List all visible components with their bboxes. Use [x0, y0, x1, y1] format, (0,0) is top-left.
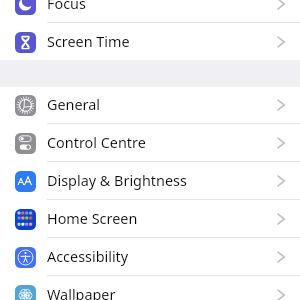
button[interactable]: Focus: [0, 0, 300, 23]
staticText: Accessibility: [47, 247, 129, 267]
button[interactable]: Control Centre: [0, 124, 300, 162]
button[interactable]: Display & Brightness: [0, 162, 300, 200]
staticText: General: [47, 95, 101, 115]
staticText: Control Centre: [47, 133, 146, 153]
button[interactable]: Accessibility: [0, 238, 300, 276]
staticText: Screen Time: [47, 32, 130, 52]
staticText: Display & Brightness: [47, 171, 187, 191]
staticText: Focus: [47, 0, 86, 14]
button[interactable]: Home Screen: [0, 200, 300, 238]
button[interactable]: General: [0, 86, 300, 124]
button[interactable]: Screen Time: [0, 23, 300, 61]
button[interactable]: Wallpaper: [0, 276, 300, 300]
staticText: Home Screen: [47, 209, 138, 229]
staticText: Wallpaper: [47, 285, 116, 300]
